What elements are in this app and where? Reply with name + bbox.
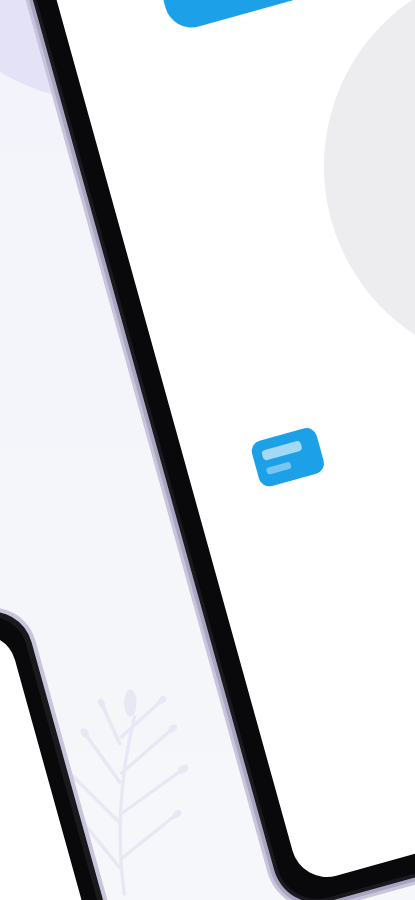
button[interactable]: Phone app preview <box>0 0 415 900</box>
